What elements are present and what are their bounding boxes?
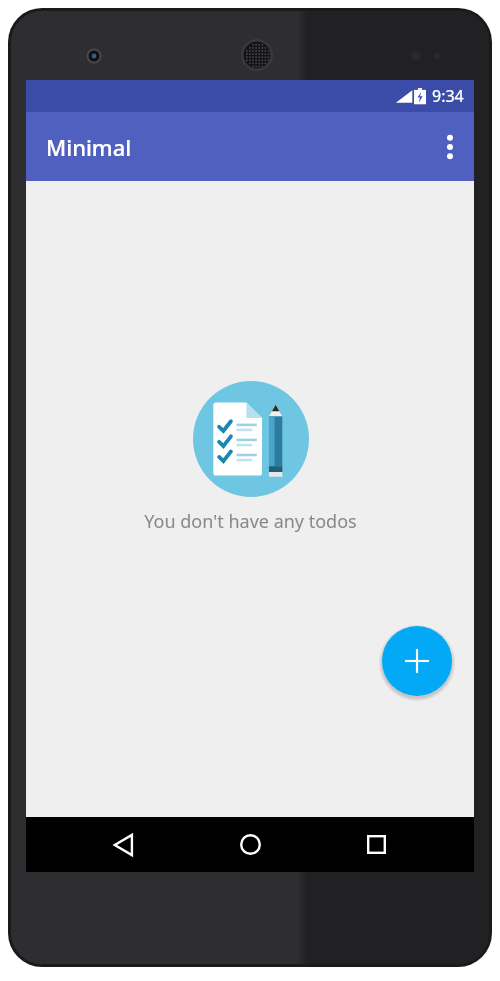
button[interactable]: Home [222,817,278,872]
button[interactable]: Back [96,817,152,872]
staticText: 9:34 [432,85,464,107]
button[interactable]: Recent apps [348,817,404,872]
button[interactable]: Add todo [382,626,452,696]
button[interactable]: More options [426,123,474,171]
staticText: You don't have any todos [144,509,357,534]
staticText: Minimal [46,132,132,162]
